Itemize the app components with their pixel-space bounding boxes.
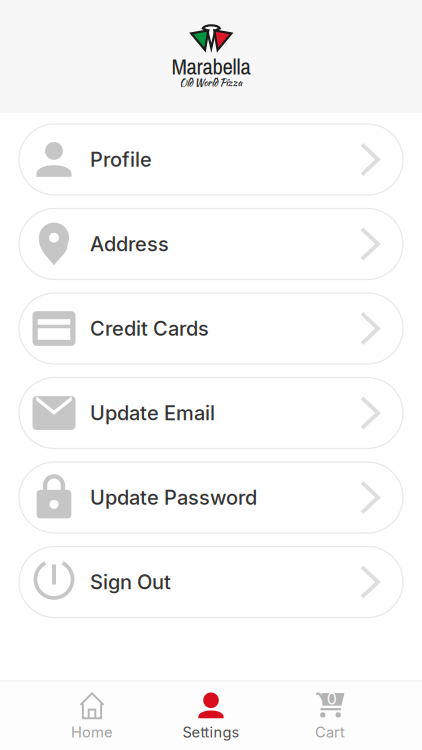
staticText: Update Password [90, 485, 257, 510]
staticText: Cart [315, 723, 345, 741]
staticText: Update Email [90, 401, 215, 425]
button[interactable]: Home [32, 692, 151, 741]
button[interactable]: Settings [151, 692, 270, 741]
staticText: Marabella [171, 51, 250, 81]
button[interactable]: Credit Cards [19, 293, 403, 364]
button[interactable]: Address [19, 208, 403, 279]
button[interactable]: Update Email [19, 377, 403, 448]
staticText: Address [90, 232, 169, 256]
staticText: Sign Out [90, 570, 171, 594]
button[interactable]: Profile [19, 124, 403, 195]
staticText: Settings [182, 723, 239, 741]
staticText: Profile [90, 147, 152, 172]
staticText: Home [71, 723, 113, 741]
button[interactable]: Update Password [19, 462, 403, 533]
button[interactable]: Sign Out [19, 546, 403, 617]
staticText: Credit Cards [90, 316, 209, 341]
staticText: Old World Pizza [179, 75, 242, 90]
button[interactable]: 0 [270, 692, 389, 741]
staticText: 0 [327, 689, 337, 708]
